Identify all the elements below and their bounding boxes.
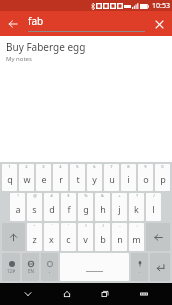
button[interactable]: & [95,193,110,221]
staticText: + [118,193,121,198]
staticText: My notes [6,55,32,63]
button[interactable]: 2 [19,164,34,191]
button[interactable]: Recents [94,283,116,305]
staticText: j [118,203,121,215]
staticText: EN [28,268,34,274]
staticText: h [100,203,106,215]
button[interactable]: Hide keyboard [133,283,155,305]
staticText: ? [136,193,138,198]
button[interactable]: Backspace [146,223,170,251]
button[interactable]: Space [60,253,129,281]
staticText: . [139,268,141,274]
button[interactable]: @ [27,193,42,221]
staticText: 10:53 [152,1,170,11]
staticText: : [136,223,138,228]
staticText: t [76,173,80,185]
staticText: z [32,233,37,245]
button[interactable]: Home [56,283,78,305]
button[interactable]: 3 [36,164,51,191]
staticText: u [109,173,115,185]
staticText: 1 [8,164,11,169]
button[interactable]: 9 [138,164,153,191]
staticText: 2 [25,164,28,169]
staticText: fab [28,14,44,28]
staticText: ) [102,223,104,228]
staticText: ! [17,193,19,198]
button[interactable]: Shift [2,223,25,251]
staticText: x [49,233,54,245]
button[interactable]: 8 [121,164,136,191]
staticText: 12# [7,268,16,274]
staticText: i [127,173,130,185]
staticText: w [23,173,31,185]
button[interactable]: ` [44,223,59,251]
staticText: e [41,173,47,185]
staticText: 4 [59,164,62,169]
staticText: r [59,173,63,185]
staticText: ` [51,223,53,228]
staticText: b [100,233,106,245]
button[interactable]: Voice input [131,253,148,281]
staticText: q [7,173,13,185]
button[interactable]: - [112,223,127,251]
staticText: a [15,203,21,215]
staticText: ( [85,223,87,228]
button[interactable]: 0 [155,164,170,191]
staticText: & [101,193,104,198]
button[interactable]: 7 [104,164,119,191]
button[interactable]: ? [129,193,144,221]
staticText: ~ [33,223,36,228]
staticText: 5 [76,164,79,169]
staticText: 0 [161,164,164,169]
staticText: @ [33,193,37,198]
button[interactable]: + [112,193,127,221]
button[interactable]: Settings [41,253,58,281]
staticText: f [67,203,71,215]
staticText: 7 [110,164,113,169]
staticText: 6 [93,164,96,169]
button[interactable]: % [78,193,93,221]
staticText: , [49,268,51,274]
staticText: / [153,193,155,198]
button[interactable]: ( [78,223,93,251]
button[interactable]: $ [61,193,76,221]
staticText: $ [67,193,70,198]
staticText: l [152,203,155,215]
staticText: 9 [144,164,147,169]
button[interactable]: 4 [53,164,68,191]
button[interactable]: Back [17,283,39,305]
staticText: c [66,233,71,245]
staticText: 8 [127,164,130,169]
button[interactable]: 5 [70,164,85,191]
staticText: 3 [42,164,45,169]
staticText: p [160,173,166,185]
staticText: n [117,233,123,245]
button[interactable]: Back [3,14,23,34]
staticText: # [50,193,53,198]
button[interactable]: ~ [27,223,42,251]
button[interactable]: : [129,223,144,251]
button[interactable]: Enter [150,253,170,281]
button[interactable]: / [146,193,161,221]
button[interactable]: ! [10,193,25,221]
button[interactable]: Buy Faberge egg [0,36,172,63]
button[interactable]: # [44,193,59,221]
staticText: s [32,203,37,215]
staticText: ' [68,223,69,228]
button[interactable]: ' [61,223,76,251]
staticText: g [83,203,89,215]
staticText: % [84,193,88,198]
button[interactable]: ) [95,223,110,251]
button[interactable]: Clear search [150,15,168,33]
staticText: - [119,223,121,228]
staticText: m [132,233,141,245]
button[interactable]: 1 [2,164,17,191]
button[interactable]: Language [22,253,39,281]
staticText: k [134,203,139,215]
staticText: Buy Faberge egg [6,40,86,54]
staticText: v [83,233,88,245]
staticText: y [92,173,97,185]
button[interactable]: Symbols [2,253,20,281]
button[interactable]: 6 [87,164,102,191]
staticText: d [49,203,55,215]
